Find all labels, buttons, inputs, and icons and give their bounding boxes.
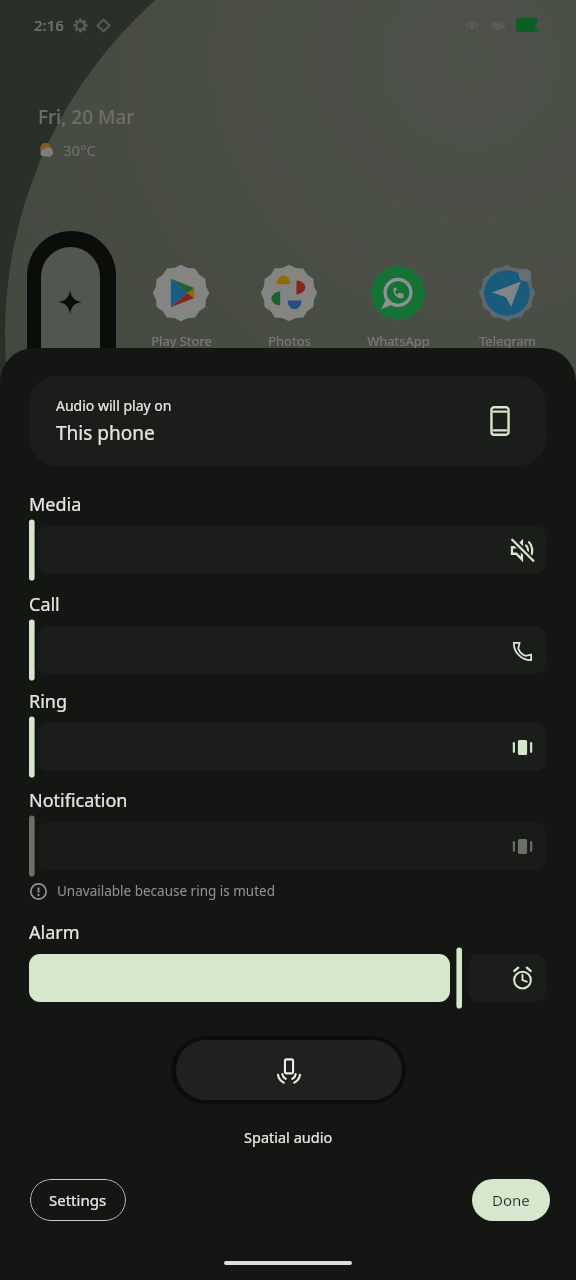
staticText: Unavailable because ring is muted xyxy=(57,882,275,900)
other: Output device xyxy=(486,407,514,435)
button[interactable]: Call volume xyxy=(29,619,546,681)
staticText: Call xyxy=(29,592,60,617)
button[interactable]: Notification volume xyxy=(29,815,546,877)
staticText: Alarm xyxy=(29,920,80,945)
button[interactable]: Photos xyxy=(239,263,339,350)
button[interactable]: Done xyxy=(472,1179,550,1221)
staticText: WhatsApp xyxy=(367,332,430,350)
staticText: Spatial audio xyxy=(244,1127,333,1147)
button[interactable]: Play Store xyxy=(131,263,231,350)
button[interactable]: Spatial audio xyxy=(171,1036,406,1104)
staticText: Media xyxy=(29,492,82,517)
staticText: Play Store xyxy=(151,332,212,350)
button[interactable]: Audio will play on xyxy=(29,376,546,466)
button[interactable]: Search xyxy=(27,231,116,391)
staticText: This phone xyxy=(56,420,155,446)
staticText: Notification xyxy=(29,788,128,813)
button[interactable]: Telegram xyxy=(457,263,557,350)
staticText: Settings xyxy=(49,1190,107,1210)
button[interactable]: Settings xyxy=(30,1179,126,1221)
staticText: Photos xyxy=(268,332,311,350)
button[interactable]: Alarm volume xyxy=(29,947,546,1009)
staticText: Audio will play on xyxy=(56,396,172,415)
staticText: Ring xyxy=(29,689,68,714)
staticText: Telegram xyxy=(479,332,536,350)
button[interactable]: Ring volume xyxy=(29,716,546,778)
button[interactable]: Media volume xyxy=(29,519,546,581)
staticText: 2:16 xyxy=(34,15,64,35)
staticText: Done xyxy=(492,1190,530,1210)
staticText: Fri, 20 Mar xyxy=(38,104,135,130)
staticText: 30°C xyxy=(63,140,97,160)
button[interactable]: WhatsApp xyxy=(348,263,448,350)
